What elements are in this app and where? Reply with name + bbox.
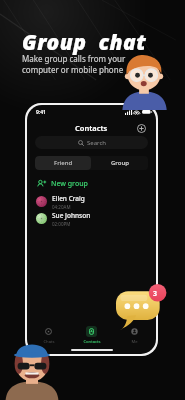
staticText: Sue Johnson [52,211,91,220]
staticText: Contacts [83,339,101,344]
button[interactable]: Chats [27,324,70,346]
staticText: Me [131,339,138,344]
button[interactable]: New group [27,176,156,191]
staticText: 3 [153,289,158,299]
button[interactable]: Contacts [70,324,113,346]
button[interactable]: Sue Johnson [27,210,156,227]
staticText: New group [51,179,88,189]
button[interactable]: Group [91,156,148,170]
staticText: Group [111,159,129,167]
button[interactable]: Me [113,324,156,346]
staticText: 9:41 [36,109,46,116]
staticText: Chats [43,339,55,344]
staticText: Ellen Craig [52,194,85,203]
staticText: Contacts [75,123,108,133]
button[interactable]: Ellen Craig [27,193,156,210]
button[interactable]: Messages, 3 unread [116,284,168,330]
staticText: 02:00PM [52,221,71,227]
staticText: Friend [54,159,73,167]
staticText: Group chat [22,28,147,57]
button[interactable]: Friend [35,156,91,170]
staticText: 04:20AM [52,204,71,210]
button[interactable]: Search [35,136,148,149]
staticText: Make group calls from your computer or m… [22,53,126,75]
button[interactable]: Add contact [135,122,147,134]
staticText: Search [87,139,106,147]
